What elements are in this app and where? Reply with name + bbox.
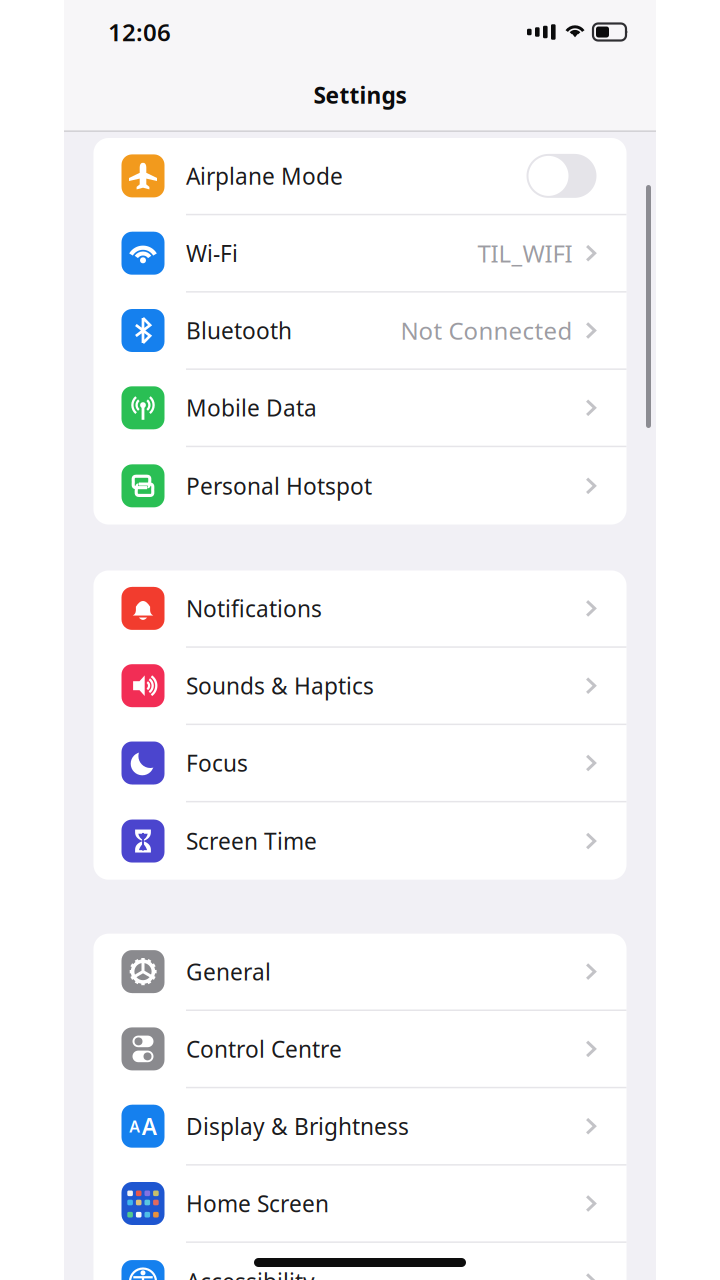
button[interactable]: Notifications bbox=[93, 570, 626, 648]
staticText: Wi-Fi bbox=[186, 238, 238, 268]
staticText: General bbox=[186, 956, 271, 987]
staticText: Personal Hotspot bbox=[186, 471, 372, 501]
staticText: Not Connected bbox=[400, 315, 572, 346]
button[interactable]: Home Screen bbox=[93, 1166, 626, 1243]
staticText: TIL_WIFI bbox=[477, 237, 572, 269]
staticText: Display & Brightness bbox=[186, 1111, 409, 1141]
button[interactable]: General bbox=[93, 934, 626, 1011]
staticText: Focus bbox=[186, 748, 248, 778]
staticText: Airplane Mode bbox=[186, 161, 343, 191]
staticText: Home Screen bbox=[186, 1188, 329, 1218]
staticText: Screen Time bbox=[186, 826, 317, 856]
button[interactable]: A bbox=[93, 1088, 626, 1166]
button[interactable]: Screen Time bbox=[93, 802, 626, 880]
button[interactable]: Mobile Data bbox=[93, 370, 626, 447]
button[interactable]: Airplane Mode bbox=[93, 138, 626, 215]
staticText: Control Centre bbox=[186, 1034, 342, 1064]
button[interactable]: Focus bbox=[93, 725, 626, 802]
button[interactable]: Sounds & Haptics bbox=[93, 648, 626, 725]
staticText: Sounds & Haptics bbox=[186, 671, 374, 701]
button[interactable]: Control Centre bbox=[93, 1011, 626, 1088]
staticText: Settings bbox=[313, 80, 406, 110]
button[interactable]: Bluetooth bbox=[93, 293, 626, 370]
staticText: A bbox=[129, 1116, 140, 1137]
staticText: Notifications bbox=[186, 593, 322, 623]
button[interactable]: Personal Hotspot bbox=[93, 447, 626, 524]
staticText: Accessibility bbox=[186, 1266, 315, 1280]
button[interactable]: Wi-Fi bbox=[93, 215, 626, 293]
staticText: Mobile Data bbox=[186, 393, 317, 423]
staticText: 12:06 bbox=[108, 16, 171, 48]
staticText: Bluetooth bbox=[186, 315, 292, 345]
button[interactable]: Accessibility bbox=[93, 1243, 626, 1280]
staticText: A bbox=[142, 1111, 157, 1141]
